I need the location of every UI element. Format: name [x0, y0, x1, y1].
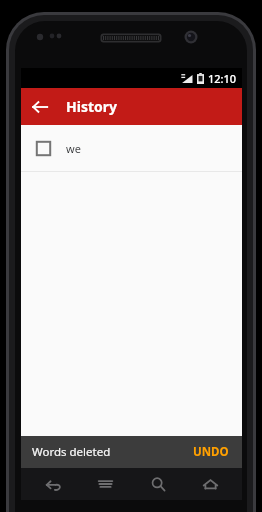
staticText: we [66, 141, 81, 156]
button[interactable]: Select we [21, 125, 242, 171]
button[interactable]: Navigate up [21, 88, 58, 125]
button[interactable]: Search [138, 468, 178, 500]
button[interactable]: Select we [30, 135, 56, 161]
button[interactable]: Home [190, 468, 230, 500]
button[interactable]: Back [33, 468, 73, 500]
staticText: Words deleted [32, 444, 111, 460]
staticText: History [66, 97, 118, 116]
button[interactable]: Recent apps [85, 468, 125, 500]
button[interactable]: UNDO [191, 440, 231, 464]
staticText: UNDO [193, 444, 229, 460]
staticText: 12:10 [208, 71, 237, 86]
